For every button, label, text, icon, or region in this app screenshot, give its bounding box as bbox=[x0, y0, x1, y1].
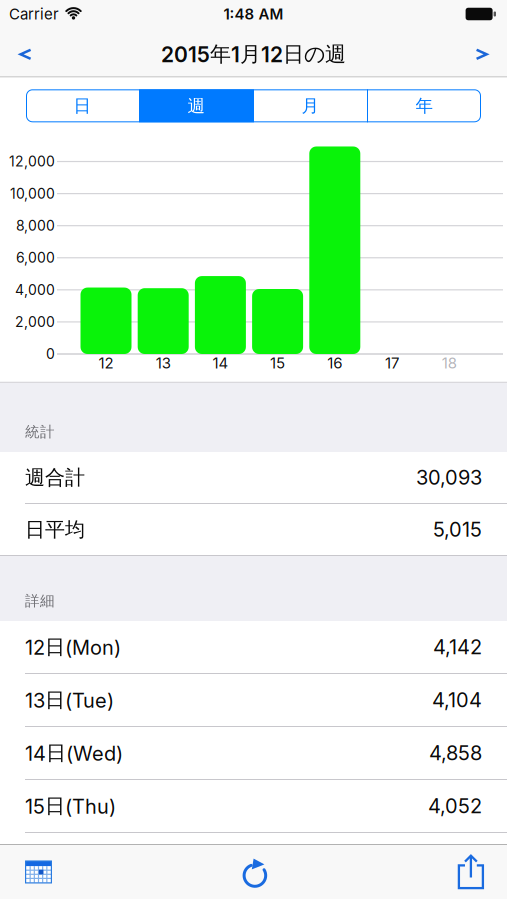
button[interactable]: 日 bbox=[26, 89, 139, 122]
staticText: 14日(Wed) bbox=[25, 740, 123, 766]
staticText: 年 bbox=[415, 95, 433, 117]
staticText: 2,000 bbox=[15, 313, 55, 330]
staticText: 4,104 bbox=[432, 688, 482, 712]
staticText: 12日(Mon) bbox=[25, 634, 121, 660]
button[interactable]: Calendar bbox=[0, 845, 52, 898]
staticText: 日平均 bbox=[25, 517, 85, 542]
staticText: 16 bbox=[327, 354, 342, 372]
staticText: 18 bbox=[442, 354, 457, 372]
staticText: 12 bbox=[98, 354, 113, 372]
staticText: 日 bbox=[73, 95, 91, 117]
staticText: 10,000 bbox=[10, 185, 55, 202]
button[interactable]: Previous week bbox=[0, 34, 32, 74]
staticText: Carrier bbox=[9, 5, 59, 23]
staticText: 4,000 bbox=[15, 281, 55, 298]
staticText: 14 bbox=[212, 354, 228, 372]
staticText: 15 bbox=[270, 354, 285, 372]
button[interactable]: Refresh bbox=[239, 845, 270, 899]
staticText: 統計 bbox=[25, 423, 55, 441]
staticText: 1:48 AM bbox=[223, 5, 283, 23]
staticText: 6,000 bbox=[16, 249, 55, 266]
button[interactable]: Next week bbox=[475, 34, 507, 74]
button[interactable]: Share bbox=[458, 845, 507, 899]
staticText: 4,858 bbox=[429, 741, 482, 765]
button[interactable]: 週 bbox=[140, 89, 253, 122]
staticText: 5,015 bbox=[433, 517, 482, 542]
button[interactable]: 月 bbox=[254, 89, 367, 122]
staticText: 4,142 bbox=[433, 635, 482, 659]
staticText: 17 bbox=[385, 354, 399, 372]
staticText: 8,000 bbox=[16, 217, 55, 234]
staticText: 12,000 bbox=[9, 153, 55, 170]
staticText: 4,052 bbox=[428, 794, 482, 818]
staticText: 月 bbox=[301, 95, 319, 117]
staticText: 30,093 bbox=[416, 465, 482, 490]
staticText: 詳細 bbox=[25, 592, 55, 610]
staticText: 2015年1月12日の週 bbox=[161, 41, 346, 67]
button[interactable]: 年 bbox=[368, 89, 481, 122]
staticText: 週合計 bbox=[25, 465, 85, 490]
staticText: 週 bbox=[187, 95, 205, 117]
staticText: 15日(Thu) bbox=[25, 793, 116, 819]
staticText: 13 bbox=[156, 354, 171, 372]
staticText: 13日(Tue) bbox=[25, 687, 114, 713]
staticText: 0 bbox=[46, 345, 55, 362]
